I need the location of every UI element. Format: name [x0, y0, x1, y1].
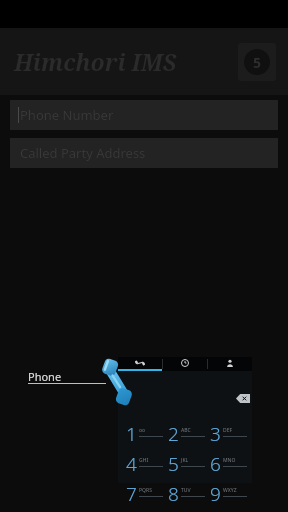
- staticText: 4: [126, 451, 137, 473]
- staticText: PQRS: [139, 487, 152, 494]
- button[interactable]: 4: [122, 451, 164, 473]
- staticText: GHI: [139, 457, 149, 464]
- staticText: WXYZ: [223, 487, 237, 494]
- staticText: JKL: [181, 457, 189, 464]
- button[interactable]: 1: [122, 421, 164, 443]
- staticText: DEF: [223, 427, 233, 434]
- staticText: 3: [210, 421, 221, 443]
- staticText: Called Party Address: [20, 144, 146, 162]
- button[interactable]: Call history: [163, 357, 207, 371]
- staticText: 9: [210, 481, 221, 503]
- button[interactable]: 6: [206, 451, 248, 473]
- staticText: TUV: [181, 487, 191, 494]
- button[interactable]: Backspace: [236, 394, 250, 403]
- button[interactable]: Notifications 5: [238, 43, 276, 81]
- staticText: 2: [168, 421, 179, 443]
- staticText: 1: [126, 421, 137, 443]
- staticText: 8: [168, 481, 179, 503]
- button[interactable]: Phone Number: [10, 100, 278, 130]
- button[interactable]: 5: [164, 451, 206, 473]
- staticText: ABC: [181, 427, 191, 434]
- staticText: 6: [210, 451, 221, 473]
- staticText: 7: [126, 481, 137, 503]
- button[interactable]: 7: [122, 481, 164, 503]
- button[interactable]: Contacts: [208, 357, 252, 371]
- staticText: Phone Number: [20, 106, 114, 124]
- button[interactable]: Dial pad: [118, 357, 162, 371]
- button[interactable]: Phone: [28, 366, 62, 386]
- staticText: Phone: [28, 369, 62, 384]
- staticText: oo: [139, 427, 146, 434]
- button[interactable]: 8: [164, 481, 206, 503]
- staticText: 5: [168, 451, 179, 473]
- button[interactable]: 3: [206, 421, 248, 443]
- button[interactable]: 9: [206, 481, 248, 503]
- staticText: MNO: [223, 457, 236, 464]
- button[interactable]: 2: [164, 421, 206, 443]
- staticText: Himchori IMS: [14, 46, 177, 77]
- button[interactable]: Called Party Address: [10, 138, 278, 168]
- staticText: 5: [253, 53, 262, 72]
